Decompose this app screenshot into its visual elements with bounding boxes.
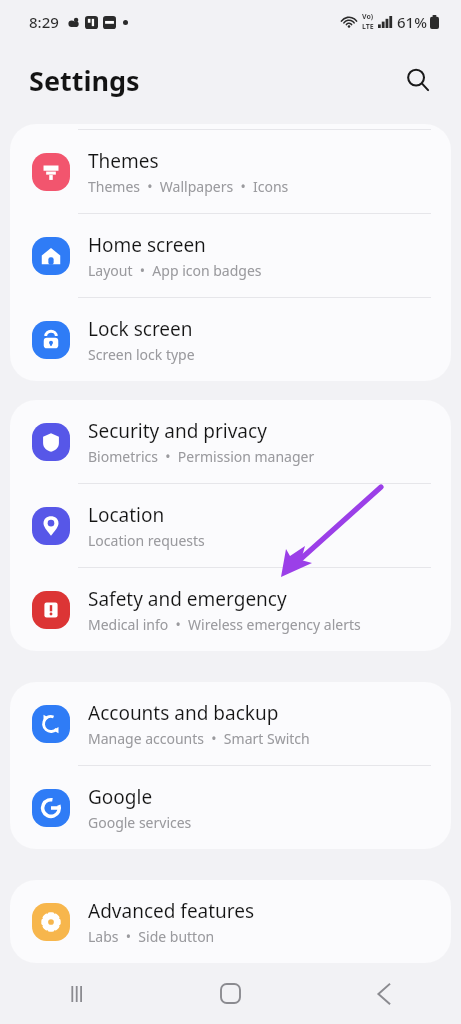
staticText: Themes • Wallpapers • Icons (88, 177, 289, 196)
button[interactable]: Home screen (10, 214, 451, 297)
button[interactable]: Lock screen (10, 298, 451, 381)
staticText: Google services (88, 813, 192, 832)
button[interactable]: Home (153, 963, 307, 1024)
staticText: Manage accounts • Smart Switch (88, 729, 310, 748)
button[interactable]: Safety and emergency (10, 568, 451, 651)
button[interactable]: Back (307, 963, 461, 1024)
button[interactable]: Search settings (396, 58, 440, 102)
button[interactable]: Advanced features (10, 880, 451, 963)
button[interactable]: Security and privacy (10, 400, 451, 483)
staticText: Google (88, 784, 153, 810)
staticText: Settings (29, 62, 140, 99)
staticText: Home screen (88, 232, 206, 258)
staticText: Safety and emergency (88, 586, 287, 612)
staticText: LTE (362, 22, 374, 32)
button[interactable]: Accounts and backup (10, 682, 451, 765)
button[interactable]: Themes (10, 130, 451, 213)
staticText: Lock screen (88, 316, 193, 342)
staticText: 61% (397, 12, 427, 32)
staticText: Advanced features (88, 898, 255, 924)
staticText: Medical info • Wireless emergency alerts (88, 615, 361, 634)
staticText: Biometrics • Permission manager (88, 447, 315, 466)
button[interactable]: Recent apps (0, 963, 153, 1024)
staticText: Security and privacy (88, 418, 267, 444)
staticText: Themes (88, 148, 159, 174)
staticText: Location requests (88, 531, 205, 550)
staticText: Screen lock type (88, 345, 195, 364)
staticText: Labs • Side button (88, 927, 215, 946)
button[interactable]: Location (10, 484, 451, 567)
staticText: Accounts and backup (88, 700, 279, 726)
staticText: Layout • App icon badges (88, 261, 262, 280)
button[interactable]: Google (10, 766, 451, 849)
staticText: 8:29 (29, 12, 59, 32)
staticText: Vo) (362, 12, 374, 22)
staticText: Location (88, 502, 165, 528)
